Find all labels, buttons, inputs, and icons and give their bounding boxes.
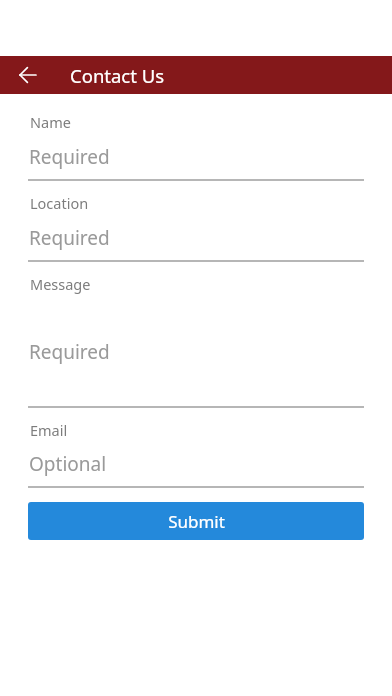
button[interactable] xyxy=(28,193,364,263)
staticText: Required xyxy=(29,144,110,170)
staticText: Submit xyxy=(168,510,225,533)
button[interactable] xyxy=(28,274,364,409)
staticText: Message xyxy=(30,274,91,294)
staticText: Name xyxy=(30,112,71,132)
staticText: Optional xyxy=(29,451,107,477)
button[interactable]: Back xyxy=(11,58,45,92)
button[interactable] xyxy=(28,420,364,489)
staticText: Required xyxy=(29,339,110,365)
staticText: Email xyxy=(30,420,68,440)
staticText: Location xyxy=(30,193,89,213)
button[interactable]: Submit xyxy=(28,502,364,540)
staticText: Contact Us xyxy=(70,63,165,88)
staticText: Required xyxy=(29,225,110,251)
button[interactable] xyxy=(28,112,364,182)
